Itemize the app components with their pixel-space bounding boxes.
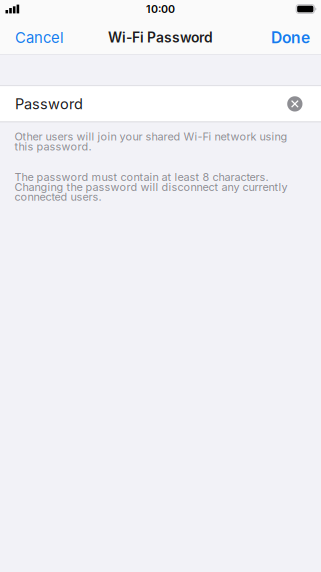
staticText: Other users will join your shared Wi-Fi …: [14, 130, 287, 153]
staticText: The password must contain at least 8 cha…: [14, 171, 287, 203]
staticText: Done: [271, 28, 310, 47]
staticText: Password: [15, 95, 83, 113]
button[interactable]: Done: [261, 21, 321, 54]
staticText: Cancel: [15, 28, 64, 46]
staticText: Wi-Fi Password: [108, 29, 213, 46]
button[interactable]: Cancel: [0, 21, 74, 54]
staticText: 10:00: [146, 2, 175, 15]
button[interactable]: Clear text: [287, 86, 302, 121]
